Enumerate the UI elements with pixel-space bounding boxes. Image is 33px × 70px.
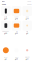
staticText: Bloom (25, 56, 29, 58)
staticText: $21 (26, 58, 29, 60)
button[interactable]: Mug (22, 6, 32, 19)
staticText: $32 (15, 32, 18, 34)
staticText: Pin (26, 30, 28, 32)
staticText: Citrus (4, 56, 8, 58)
staticText: Shop (2, 4, 6, 5)
button[interactable]: Bloom (22, 44, 32, 60)
staticText: $48 (15, 18, 18, 20)
staticText: See all (27, 4, 31, 5)
button[interactable]: Case (12, 6, 21, 19)
button[interactable]: Speaker (1, 20, 11, 34)
staticText: $89 (4, 32, 7, 34)
staticText: 100% (27, 1, 31, 2)
staticText: Kit (16, 30, 17, 32)
staticText: Linen (14, 56, 18, 58)
button[interactable]: Bottle (1, 6, 11, 19)
button[interactable]: Linen (12, 44, 21, 60)
button[interactable]: See all (27, 4, 31, 5)
staticText: $8 (26, 32, 28, 34)
staticText: $39 (15, 58, 18, 60)
button[interactable]: Kit (12, 20, 21, 34)
staticText: $6 (5, 58, 7, 60)
button[interactable]: Pin (22, 20, 32, 34)
button[interactable]: Citrus (1, 44, 11, 60)
staticText: $14 (26, 18, 29, 20)
staticText: Case (14, 16, 18, 18)
staticText: Speaker (2, 30, 9, 32)
staticText: $24 (4, 18, 7, 20)
staticText: 9:41 (2, 1, 5, 2)
staticText: Bottle (4, 16, 7, 18)
staticText: Mug (26, 16, 29, 18)
